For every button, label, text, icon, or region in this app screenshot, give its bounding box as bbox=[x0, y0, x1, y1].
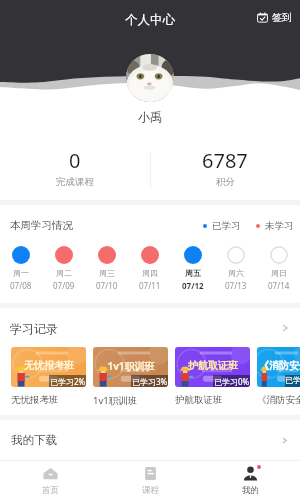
button[interactable]: 周一 bbox=[0, 246, 42, 291]
staticText: 07/14 bbox=[268, 280, 290, 291]
staticText: 6787 bbox=[202, 147, 248, 174]
staticText: 07/10 bbox=[96, 280, 118, 291]
button[interactable]: 周三 bbox=[85, 246, 128, 291]
staticText: 本周学习情况 bbox=[10, 219, 73, 232]
staticText: 积分 bbox=[216, 176, 235, 188]
staticText: 07/13 bbox=[225, 280, 247, 291]
staticText: 无忧报考班 bbox=[11, 394, 59, 406]
staticText: 首页 bbox=[42, 485, 59, 496]
staticText: 周二 bbox=[56, 268, 72, 278]
button[interactable]: 学习记录 bbox=[0, 308, 300, 348]
button[interactable]: 周四 bbox=[128, 246, 171, 291]
staticText: 07/08 bbox=[10, 280, 32, 291]
button[interactable]: 无忧报考班 bbox=[11, 347, 86, 406]
button[interactable]: 头像 bbox=[126, 54, 174, 102]
staticText: 未学习 bbox=[265, 220, 294, 232]
staticText: 已学习0% bbox=[285, 375, 300, 387]
button[interactable]: 课程 bbox=[100, 461, 200, 500]
staticText: 1v1职训班 bbox=[107, 359, 155, 373]
staticText: 周五 bbox=[185, 268, 201, 278]
staticText: 个人中心 bbox=[125, 12, 175, 28]
staticText: 周四 bbox=[142, 268, 158, 278]
staticText: 小禹 bbox=[138, 109, 162, 124]
button[interactable]: 我的下载 bbox=[0, 420, 300, 460]
staticText: 周三 bbox=[99, 268, 115, 278]
button[interactable]: 护航取证班 bbox=[175, 347, 250, 406]
button[interactable]: 1v1职训班 bbox=[93, 347, 168, 407]
staticText: 0 bbox=[69, 147, 81, 174]
button[interactable]: 0 bbox=[0, 140, 150, 200]
button[interactable]: 周日 bbox=[257, 246, 300, 291]
staticText: 07/11 bbox=[139, 280, 161, 291]
staticText: 无忧报考班 bbox=[24, 359, 74, 372]
staticText: 周日 bbox=[271, 268, 287, 278]
staticText: 1v1职训班 bbox=[93, 394, 138, 407]
staticText: 07/09 bbox=[53, 280, 75, 291]
staticText: 我的下载 bbox=[11, 433, 57, 447]
staticText: 《消防安全 bbox=[257, 394, 300, 406]
staticText: 周六 bbox=[228, 268, 244, 278]
staticText: 07/12 bbox=[182, 280, 204, 291]
staticText: 课程 bbox=[142, 485, 159, 496]
button[interactable]: 周五 bbox=[171, 246, 214, 291]
staticText: 已学习 bbox=[212, 220, 241, 232]
button[interactable]: 签到 bbox=[257, 11, 300, 24]
staticText: 《消防安全 bbox=[259, 359, 300, 372]
staticText: 已学习0% bbox=[214, 376, 250, 387]
staticText: 学习记录 bbox=[10, 321, 58, 336]
staticText: 护航取证班 bbox=[175, 394, 223, 406]
staticText: 签到 bbox=[272, 11, 292, 24]
button[interactable]: 周六 bbox=[214, 246, 257, 291]
button[interactable]: 首页 bbox=[0, 461, 100, 500]
staticText: 周一 bbox=[13, 268, 29, 278]
button[interactable]: 我的 bbox=[200, 461, 300, 500]
staticText: 我的 bbox=[242, 485, 259, 496]
staticText: 护航取证班 bbox=[188, 359, 238, 372]
staticText: 完成课程 bbox=[56, 176, 94, 188]
staticText: 已学习3% bbox=[132, 376, 168, 387]
staticText: 已学习2% bbox=[50, 376, 86, 387]
button[interactable]: 周二 bbox=[42, 246, 85, 291]
button[interactable]: 《消防安全 bbox=[257, 347, 300, 406]
button[interactable]: 6787 bbox=[150, 140, 300, 200]
